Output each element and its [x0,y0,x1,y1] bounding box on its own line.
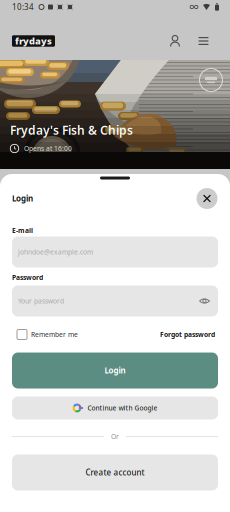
staticText: Forgot password [160,330,215,339]
staticText: 10:34 [12,2,34,12]
button[interactable]: Forgot password [160,328,215,340]
staticText: Opens at 16:00 [24,144,72,153]
staticText: Remember me [31,330,78,339]
staticText: Or [111,432,119,441]
button[interactable]: Menu [197,34,210,48]
staticText: Password [12,273,43,282]
staticText: Login [12,193,33,204]
button[interactable]: Create account [12,454,218,490]
button[interactable]: Remember me [17,328,78,340]
button[interactable]: Show password [199,295,210,306]
staticText: Your password [18,297,64,305]
button[interactable]: Login [12,352,218,388]
button[interactable]: Continue with Google [12,396,218,419]
staticText: frydays [15,35,52,47]
staticText: johndoe@example.com [18,248,93,256]
staticText: Continue with Google [87,404,157,412]
staticText: Login [104,365,125,376]
staticText: Fryday's Fish & Chips [10,122,133,138]
staticText: Create account [85,467,144,478]
button[interactable]: Account [168,34,182,48]
button[interactable]: Frydays home [12,34,55,48]
button[interactable]: Close [196,187,218,209]
staticText: E-mail [12,226,33,235]
